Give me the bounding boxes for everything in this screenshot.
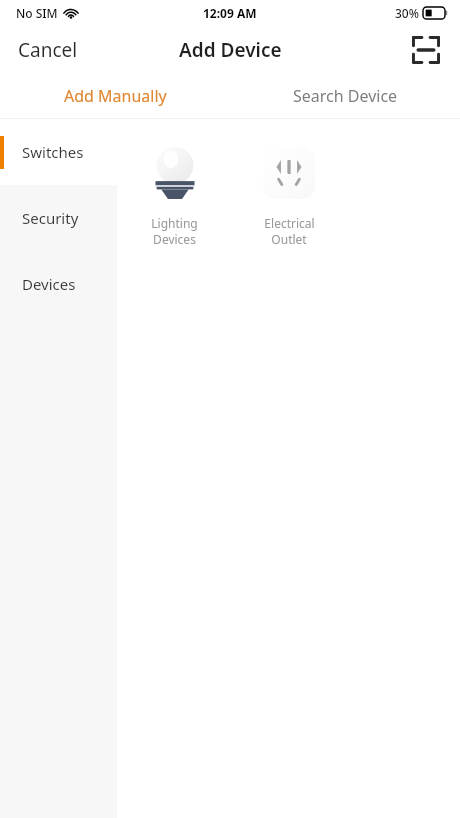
staticText: Devices: [22, 274, 76, 294]
button[interactable]: Devices: [0, 251, 117, 317]
button[interactable]: Search Device: [230, 73, 460, 118]
staticText: Add Manually: [64, 85, 167, 107]
staticText: Electrical: [264, 215, 315, 231]
button[interactable]: Scan QR code: [406, 30, 446, 70]
staticText: Search Device: [293, 85, 398, 107]
button[interactable]: Add Manually: [0, 73, 230, 118]
staticText: Security: [22, 208, 79, 228]
button[interactable]: Cancel: [0, 29, 96, 71]
staticText: Add Device: [179, 37, 282, 63]
staticText: 12:09 AM: [203, 5, 257, 21]
staticText: Outlet: [271, 231, 307, 247]
staticText: No SIM: [16, 5, 58, 21]
staticText: Switches: [22, 142, 84, 162]
button[interactable]: Security: [0, 185, 117, 251]
button[interactable]: Electrical: [232, 139, 346, 253]
staticText: Lighting: [151, 215, 198, 231]
staticText: Devices: [153, 231, 196, 247]
staticText: Cancel: [18, 37, 78, 63]
button[interactable]: Switches: [0, 119, 117, 185]
staticText: 30%: [395, 5, 419, 21]
button[interactable]: Lighting: [117, 139, 232, 253]
